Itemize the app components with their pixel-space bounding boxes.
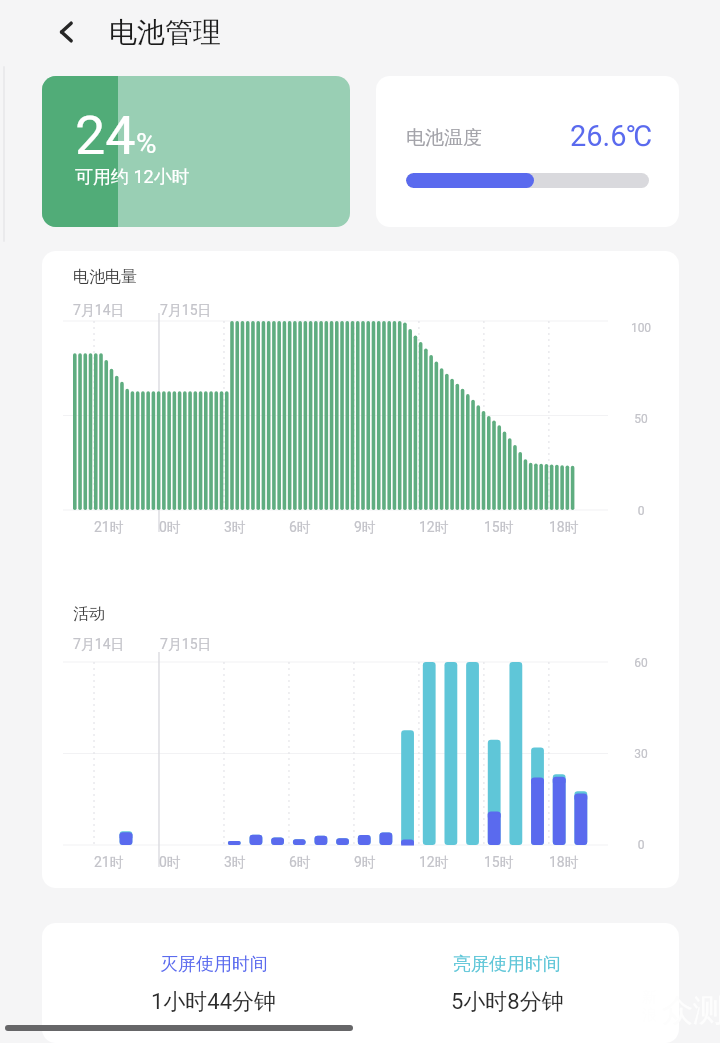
staticText: 0 (624, 504, 658, 518)
staticText: 26.6℃ (570, 119, 653, 153)
staticText: 7月15日 (160, 302, 212, 320)
staticText: 50 (624, 412, 658, 426)
staticText: 15时 (484, 854, 514, 872)
staticText: 活动 (73, 604, 105, 624)
staticText: 60 (624, 656, 658, 670)
staticText: 电池电量 (73, 267, 137, 287)
button[interactable]: Back (44, 9, 90, 55)
staticText: 电池管理 (109, 15, 221, 50)
staticText: 3时 (224, 854, 246, 872)
staticText: 30 (624, 747, 658, 761)
staticText: 18时 (549, 854, 579, 872)
staticText: 21时 (94, 854, 124, 872)
staticText: 电池温度 (406, 126, 482, 150)
staticText: 24 (75, 104, 136, 167)
staticText: 12时 (419, 519, 449, 537)
staticText: 0 (624, 838, 658, 852)
button[interactable]: 灭屏使用时间 (114, 953, 314, 1016)
staticText: 21时 (94, 519, 124, 537)
staticText: 可用约 12小时 (75, 166, 190, 189)
staticText: 亮屏使用时间 (453, 953, 561, 976)
staticText: 6时 (289, 854, 311, 872)
staticText: 众测 (662, 991, 720, 1030)
staticText: 15时 (484, 519, 514, 537)
staticText: 灭屏使用时间 (160, 953, 268, 976)
staticText: 7月14日 (73, 636, 125, 654)
staticText: 18时 (549, 519, 579, 537)
staticText: 1小时44分钟 (151, 988, 277, 1016)
staticText: 9时 (354, 519, 376, 537)
staticText: 0时 (159, 519, 181, 537)
button[interactable]: 24 (42, 76, 350, 227)
staticText: 9时 (354, 854, 376, 872)
staticText: 3时 (224, 519, 246, 537)
staticText: 0时 (159, 854, 181, 872)
staticText: % (136, 127, 157, 160)
staticText: 7月14日 (73, 302, 125, 320)
button[interactable]: 亮屏使用时间 (407, 953, 607, 1016)
staticText: 100 (624, 321, 658, 335)
staticText: 5小时8分钟 (451, 988, 564, 1016)
button[interactable]: 电池温度 (376, 76, 679, 227)
staticText: 12时 (419, 854, 449, 872)
staticText: 7月15日 (160, 636, 212, 654)
staticText: 6时 (289, 519, 311, 537)
